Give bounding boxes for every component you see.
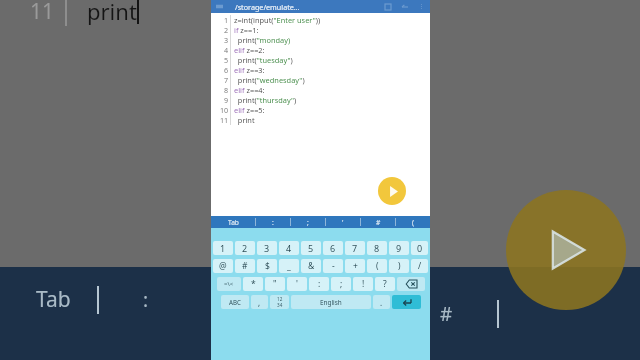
staticText: Tab [228,218,239,227]
staticText: elif z==5: [234,105,265,115]
staticText: 10 [220,105,229,115]
button[interactable]: ; [291,216,325,228]
staticText: ! [362,278,365,290]
staticText: , [258,297,261,308]
staticText: 5 [224,55,229,65]
staticText: 8 [224,85,229,95]
button[interactable]: 2 [235,241,255,255]
button[interactable]: - [323,259,343,273]
button[interactable]: + [345,259,365,273]
button[interactable]: Key [392,295,421,309]
button[interactable]: Menu [214,1,225,12]
staticText: 11 [220,115,229,125]
button[interactable]: 0 [411,241,428,255]
button[interactable]: 7 [345,241,365,255]
button[interactable]: ABC [221,295,249,309]
staticText: ; [340,278,343,290]
staticText: _ [287,260,291,272]
button[interactable]: Key [397,277,425,291]
button[interactable]: More options [416,1,427,12]
staticText: 9 [396,242,402,254]
staticText: =\< [224,280,234,288]
staticText: . [380,297,383,308]
button[interactable]: , [251,295,268,309]
button[interactable]: 6 [323,241,343,255]
staticText: # [440,301,453,327]
button[interactable]: : [309,277,329,291]
staticText: : [318,278,321,290]
button[interactable]: ? [375,277,395,291]
button[interactable]: 4 [279,241,299,255]
staticText: ( [376,260,379,272]
button[interactable]: : [256,216,290,228]
staticText: # [242,260,248,272]
button[interactable]: =\< [217,277,241,291]
staticText: print [234,115,255,125]
button[interactable]: _ [279,259,299,273]
staticText: print("tuesday") [234,55,293,65]
staticText: 4 [286,242,292,254]
staticText: 7 [352,242,358,254]
staticText: 1 [224,15,229,25]
button[interactable]: $ [257,259,277,273]
button[interactable]: / [411,259,428,273]
staticText: " [273,278,277,290]
button[interactable]: 1 [213,241,233,255]
button[interactable]: Run [378,177,406,205]
staticText: 4 [224,45,229,55]
button[interactable]: Save [382,1,393,12]
button[interactable]: @ [213,259,233,273]
staticText: : [272,218,274,227]
staticText: z=int(input("Enter user")) [234,15,321,25]
staticText: 7 [224,75,229,85]
button[interactable]: 9 [389,241,409,255]
staticText: ? [383,278,387,290]
staticText: * [251,278,256,290]
button[interactable]: 8 [367,241,387,255]
staticText: ' [296,278,298,290]
staticText: if z==1: [234,25,259,35]
button[interactable]: # [361,216,395,228]
button[interactable]: 1 [211,13,430,216]
button[interactable]: 3 [257,241,277,255]
staticText: - [332,260,335,272]
staticText: elif z==2: [234,45,265,55]
button[interactable]: Key [270,295,289,309]
staticText: elif z==4: [234,85,265,95]
staticText: 1 [220,242,226,254]
button[interactable]: * [243,277,263,291]
staticText: $ [265,260,270,272]
button[interactable]: ' [287,277,307,291]
button[interactable]: ( [396,216,430,228]
button[interactable]: ( [367,259,387,273]
staticText: 11 [30,0,55,26]
button[interactable]: ) [389,259,409,273]
staticText: 12 [277,296,283,302]
staticText: print("wednesday") [234,75,305,85]
button[interactable]: # [235,259,255,273]
staticText: / [418,260,422,272]
button[interactable]: 5 [301,241,321,255]
staticText: ( [412,218,414,227]
staticText: 5 [308,242,314,254]
button[interactable]: ; [331,277,351,291]
staticText: # [376,218,381,227]
button[interactable]: & [301,259,321,273]
staticText: 9 [224,95,229,105]
button[interactable]: Tab [211,216,255,228]
button[interactable]: " [265,277,285,291]
button[interactable]: Undo [399,1,410,12]
staticText: 6 [224,65,229,75]
button[interactable]: ' [326,216,360,228]
button[interactable]: English [291,295,371,309]
staticText: : [143,287,149,313]
staticText: 6 [330,242,336,254]
button[interactable]: . [373,295,390,309]
staticText: + [353,260,358,272]
staticText: 8 [374,242,380,254]
staticText: ; [307,218,309,227]
button[interactable]: ! [353,277,373,291]
staticText: 3 [224,35,229,45]
staticText: ' [342,218,344,227]
staticText: English [320,298,342,307]
